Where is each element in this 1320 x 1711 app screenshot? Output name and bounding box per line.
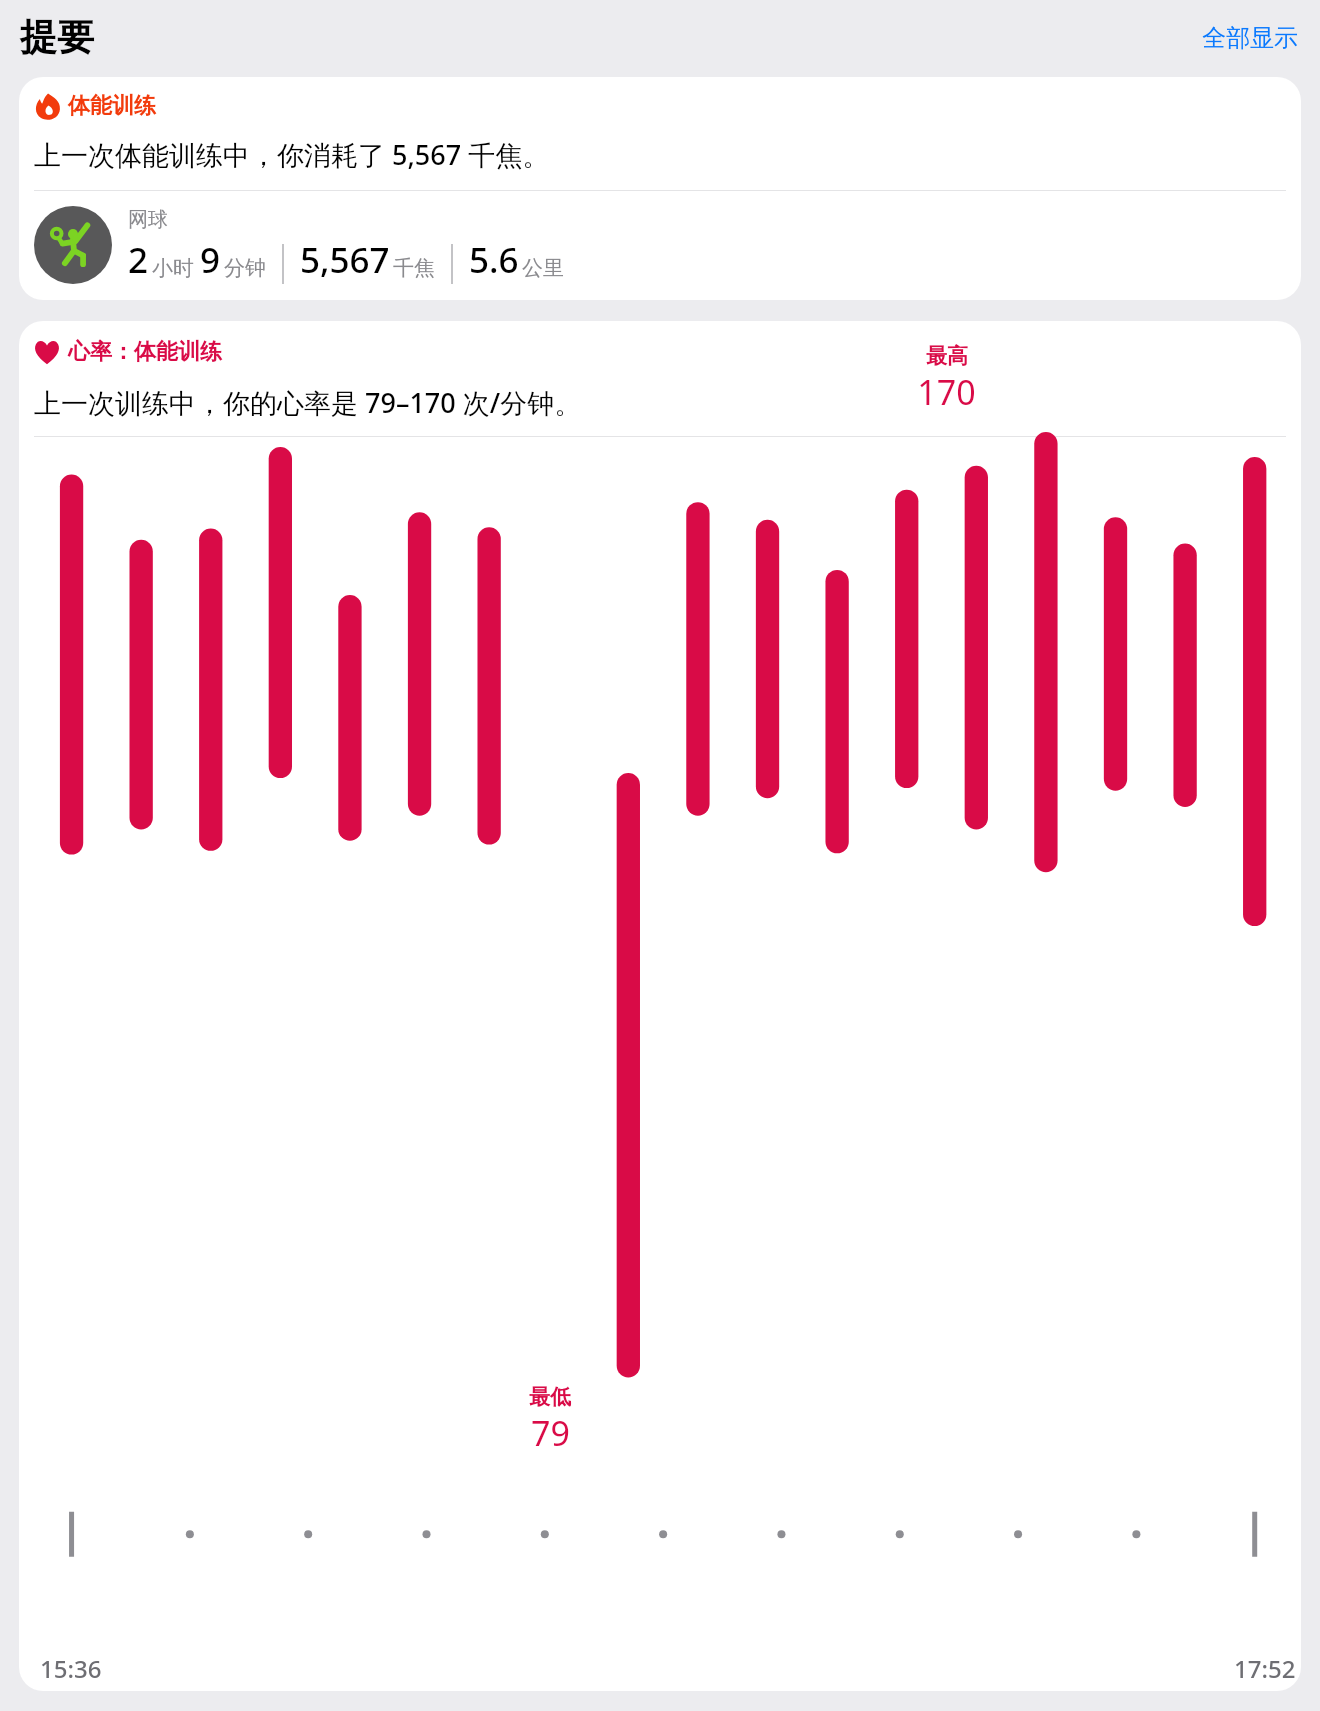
staticText: 2 [128, 236, 149, 284]
staticText: 上一次体能训练中，你消耗了 5,567 千焦。 [34, 136, 550, 173]
staticText: 9 [200, 236, 221, 284]
staticText: 千焦 [393, 255, 435, 281]
staticText: 公里 [522, 255, 564, 281]
button[interactable]: Heart rate [19, 321, 1301, 1691]
staticText: 170 [917, 369, 976, 415]
staticText: 5,567 [300, 236, 390, 284]
staticText: 提要 [20, 14, 94, 61]
staticText: 79 [531, 1410, 570, 1456]
staticText: 分钟 [224, 255, 266, 281]
staticText: 体能训练 [68, 92, 156, 120]
staticText: 全部显示 [1202, 23, 1298, 53]
staticText: 5.6 [469, 236, 519, 284]
staticText: 上一次训练中，你的心率是 79–170 次/分钟。 [34, 384, 582, 421]
staticText: 最高 [926, 343, 968, 369]
staticText: 小时 [152, 255, 194, 281]
staticText: 网球 [128, 207, 168, 232]
other: Workout [34, 93, 61, 120]
button[interactable]: 全部显示 [1198, 17, 1302, 59]
other: Heart rate [34, 339, 60, 365]
button[interactable]: Workout [19, 77, 1301, 300]
staticText: 15:36 [40, 1652, 102, 1685]
staticText: 心率：体能训练 [68, 338, 222, 366]
staticText: 最低 [529, 1384, 571, 1410]
staticText: 17:52 [1234, 1652, 1296, 1685]
